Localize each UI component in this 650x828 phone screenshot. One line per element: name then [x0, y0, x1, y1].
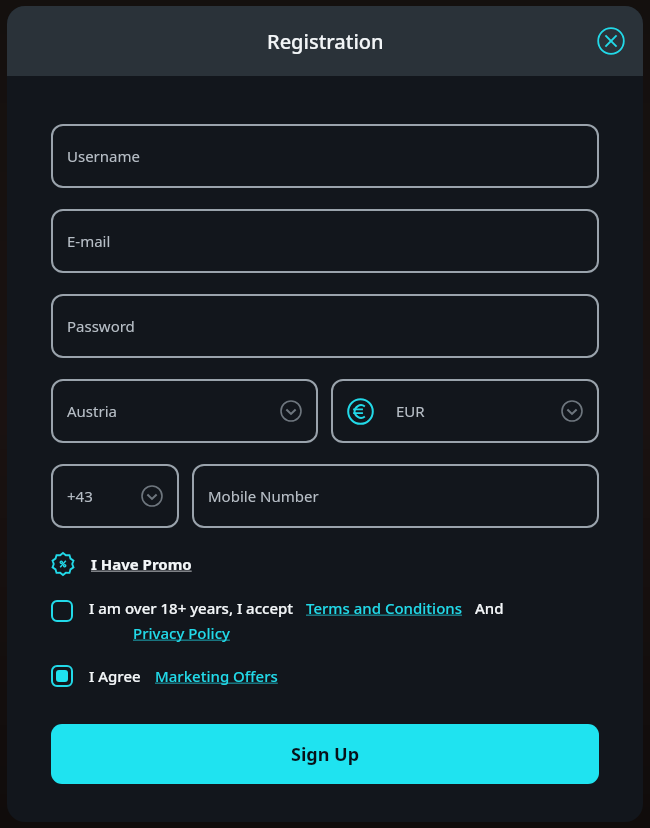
- button[interactable]: Username: [51, 124, 599, 188]
- staticText: Privacy Policy: [133, 623, 230, 643]
- staticText: +43: [67, 486, 93, 506]
- staticText: I Agree: [89, 666, 141, 686]
- staticText: And: [475, 598, 504, 618]
- staticText: Password: [67, 316, 135, 336]
- button[interactable]: I Have Promo: [51, 550, 192, 578]
- button[interactable]: Austria: [51, 379, 318, 443]
- button[interactable]: E-mail: [51, 209, 599, 273]
- staticText: E-mail: [67, 231, 111, 251]
- button[interactable]: I Agree: [51, 665, 278, 687]
- button[interactable]: EUR: [331, 379, 599, 443]
- staticText: Terms and Conditions: [306, 598, 463, 618]
- button[interactable]: Close: [595, 25, 627, 57]
- staticText: EUR: [396, 401, 425, 421]
- staticText: Mobile Number: [208, 486, 319, 506]
- staticText: Registration: [267, 28, 384, 55]
- button[interactable]: Sign Up: [51, 724, 599, 784]
- button[interactable]: +43: [51, 464, 179, 528]
- button[interactable]: I am over 18+ years, I accept: [51, 598, 599, 643]
- button[interactable]: Password: [51, 294, 599, 358]
- staticText: I Have Promo: [91, 554, 192, 574]
- staticText: I am over 18+ years, I accept: [89, 598, 294, 618]
- staticText: Sign Up: [291, 742, 360, 767]
- staticText: Username: [67, 146, 140, 166]
- staticText: Marketing Offers: [155, 666, 278, 686]
- staticText: Austria: [67, 401, 117, 421]
- button[interactable]: Mobile Number: [192, 464, 599, 528]
